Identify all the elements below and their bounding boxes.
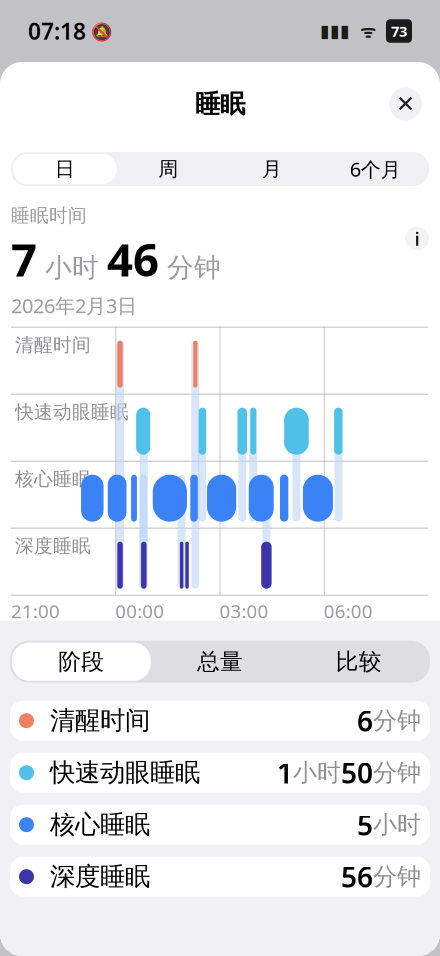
staticText: 阶段 xyxy=(58,648,104,676)
button[interactable]: 深度睡眠 xyxy=(10,857,430,897)
staticText: ᯤ xyxy=(350,19,386,42)
staticText: 07:18 xyxy=(28,16,86,46)
staticText: 6个月 xyxy=(350,156,401,182)
staticText: 核心睡眠 xyxy=(34,809,150,840)
staticText: 快速动眼睡眠 xyxy=(34,757,200,788)
button[interactable]: 信息 xyxy=(405,226,429,251)
staticText: 50 xyxy=(341,754,373,791)
button[interactable]: 总量 xyxy=(151,643,289,681)
staticText: 快速动眼睡眠 xyxy=(15,401,129,424)
staticText: 核心睡眠 xyxy=(15,468,91,491)
button[interactable]: 关闭 xyxy=(389,87,422,120)
staticText: 7 xyxy=(11,229,37,289)
staticText: 小时 xyxy=(37,251,107,284)
staticText: ▮▮▮ xyxy=(320,21,350,41)
button[interactable]: 比较 xyxy=(289,643,428,681)
staticText: 小时 xyxy=(373,810,421,839)
button[interactable]: 阶段 xyxy=(12,643,151,681)
staticText: 分钟 xyxy=(373,758,421,787)
staticText: 分钟 xyxy=(373,862,421,891)
staticText: 深度睡眠 xyxy=(15,535,91,558)
staticText: 21:00 xyxy=(11,599,60,623)
staticText: 46 xyxy=(107,229,159,289)
staticText: 5 xyxy=(357,806,373,843)
staticText: 56 xyxy=(341,858,373,895)
button[interactable]: 核心睡眠 xyxy=(10,805,430,845)
button[interactable]: 周 xyxy=(116,154,220,184)
staticText: 清醒时间 xyxy=(34,705,150,736)
staticText: 00:00 xyxy=(115,599,164,623)
staticText: 睡眠时间 xyxy=(11,204,87,227)
button[interactable]: 6个月 xyxy=(323,154,427,184)
staticText: 清醒时间 xyxy=(15,334,91,357)
staticText: 🔕 xyxy=(86,19,113,42)
button[interactable]: 快速动眼睡眠 xyxy=(10,753,430,793)
staticText: 比较 xyxy=(336,648,382,676)
staticText: i xyxy=(414,226,419,251)
staticText: 睡眠 xyxy=(195,88,245,119)
staticText: 73 xyxy=(391,21,407,41)
staticText: 深度睡眠 xyxy=(34,861,150,892)
button[interactable]: 日 xyxy=(13,154,116,184)
staticText: 分钟 xyxy=(159,251,221,284)
button[interactable]: 清醒时间 xyxy=(10,701,430,741)
staticText: 06:00 xyxy=(324,599,373,623)
staticText: 总量 xyxy=(197,648,243,676)
staticText: 日 xyxy=(55,157,75,181)
staticText: 分钟 xyxy=(373,706,421,735)
staticText: 周 xyxy=(158,157,178,181)
staticText: 03:00 xyxy=(219,599,268,623)
staticText: 2026年2月3日 xyxy=(11,292,137,319)
staticText: 6 xyxy=(357,702,373,739)
button[interactable]: 月 xyxy=(220,154,323,184)
staticText: 1 xyxy=(277,754,293,791)
staticText: 月 xyxy=(262,157,282,181)
staticText: ✕ xyxy=(396,91,415,117)
staticText: 小时 xyxy=(293,758,341,787)
